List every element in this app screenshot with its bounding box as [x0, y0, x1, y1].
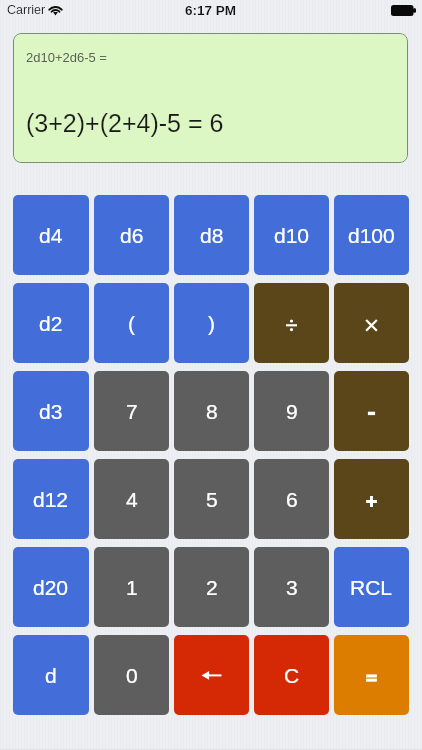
other: Battery full — [391, 5, 416, 16]
staticText: d6 — [120, 224, 144, 247]
staticText: d10 — [274, 224, 310, 247]
staticText: 3 — [286, 576, 298, 599]
button[interactable]: 5 — [174, 459, 249, 539]
button[interactable]: d3 — [13, 371, 89, 451]
button[interactable]: RCL — [334, 547, 409, 627]
staticText: ) — [208, 312, 215, 335]
button[interactable]: ( — [94, 283, 169, 363]
staticText: d8 — [200, 224, 224, 247]
button[interactable]: 6 — [254, 459, 329, 539]
staticText: C — [284, 664, 300, 687]
button[interactable]: 0 — [94, 635, 169, 715]
button[interactable]: Backspace — [174, 635, 249, 715]
staticText: d — [45, 664, 57, 687]
staticText: ( — [128, 312, 135, 335]
button[interactable]: d10 — [254, 195, 329, 275]
staticText: d100 — [348, 224, 395, 247]
staticText: 6 — [286, 488, 298, 511]
button[interactable]: Equals — [334, 635, 409, 715]
button[interactable]: d100 — [334, 195, 409, 275]
staticText: d4 — [39, 224, 63, 247]
button[interactable]: Plus — [334, 459, 409, 539]
staticText: 6:17 PM — [185, 3, 237, 18]
button[interactable]: ) — [174, 283, 249, 363]
button[interactable]: 2d10+2d6-5 = — [13, 33, 408, 163]
button[interactable]: 9 — [254, 371, 329, 451]
button[interactable]: Minus — [334, 371, 409, 451]
button[interactable]: 1 — [94, 547, 169, 627]
staticText: 2d10+2d6-5 = — [26, 50, 107, 65]
staticText: 1 — [126, 576, 138, 599]
button[interactable]: d12 — [13, 459, 89, 539]
staticText: 7 — [126, 400, 138, 423]
other: Wi-Fi signal — [49, 5, 62, 16]
button[interactable]: d2 — [13, 283, 89, 363]
staticText: d20 — [33, 576, 69, 599]
button[interactable]: 8 — [174, 371, 249, 451]
button[interactable]: d4 — [13, 195, 89, 275]
staticText: (3+2)+(2+4)-5 = 6 — [26, 109, 224, 137]
staticText: 9 — [286, 400, 298, 423]
staticText: RCL — [350, 576, 393, 599]
staticText: 5 — [206, 488, 218, 511]
button[interactable]: d — [13, 635, 89, 715]
button[interactable]: Divide — [254, 283, 329, 363]
staticText: 8 — [206, 400, 218, 423]
button[interactable]: d6 — [94, 195, 169, 275]
staticText: Carrier — [7, 3, 46, 17]
staticText: d12 — [33, 488, 69, 511]
button[interactable]: 2 — [174, 547, 249, 627]
staticText: d2 — [39, 312, 63, 335]
button[interactable]: Multiply — [334, 283, 409, 363]
button[interactable]: 7 — [94, 371, 169, 451]
button[interactable]: C — [254, 635, 329, 715]
button[interactable]: 4 — [94, 459, 169, 539]
staticText: d3 — [39, 400, 63, 423]
staticText: 0 — [126, 664, 138, 687]
button[interactable]: 3 — [254, 547, 329, 627]
staticText: 4 — [126, 488, 138, 511]
button[interactable]: d8 — [174, 195, 249, 275]
button[interactable]: d20 — [13, 547, 89, 627]
staticText: 2 — [206, 576, 218, 599]
